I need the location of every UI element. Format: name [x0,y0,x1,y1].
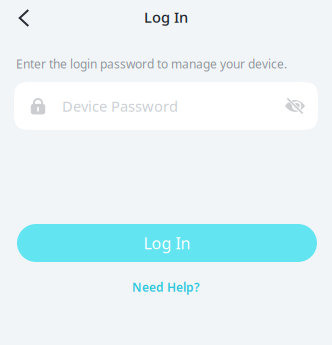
staticText: Need Help? [132,279,200,295]
button[interactable]: Back [0,0,40,34]
staticText: Device Password [62,96,178,116]
staticText: Log In [144,7,188,27]
button[interactable]: Device Password [14,82,318,130]
button[interactable]: Show password [284,97,318,115]
staticText: Log In [143,232,190,254]
button[interactable]: Need Help? [0,276,332,298]
staticText: Enter the login password to manage your … [16,56,287,72]
button[interactable]: Log In [17,224,317,262]
